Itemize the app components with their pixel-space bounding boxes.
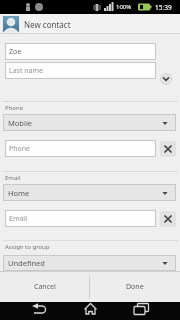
staticText: 15:39: [155, 3, 172, 12]
button[interactable]: Mobile: [3, 114, 176, 131]
button[interactable]: Phone: [5, 140, 156, 157]
button[interactable]: [60, 302, 120, 320]
staticText: Mobile: [8, 118, 33, 128]
button[interactable]: Done: [90, 271, 180, 302]
staticText: Done: [126, 282, 144, 292]
staticText: Home: [8, 188, 30, 198]
staticText: 100%: [116, 3, 132, 11]
button[interactable]: Home: [3, 184, 176, 201]
staticText: Email: [5, 174, 21, 182]
staticText: Email: [9, 214, 27, 224]
staticText: Phone: [5, 104, 24, 112]
staticText: Undefined: [8, 258, 45, 268]
staticText: Cancel: [34, 282, 56, 292]
button[interactable]: Cancel: [0, 271, 89, 302]
staticText: Zoe: [9, 47, 22, 57]
button[interactable]: [120, 302, 180, 320]
button[interactable]: [0, 302, 60, 320]
staticText: Phone: [9, 144, 31, 154]
button[interactable]: Undefined: [3, 255, 176, 271]
button[interactable]: [160, 141, 176, 157]
staticText: Last name: [9, 66, 44, 76]
button[interactable]: [160, 211, 176, 227]
button[interactable]: Zoe: [5, 43, 156, 60]
staticText: Assign to group: [5, 243, 50, 251]
button[interactable]: [160, 73, 172, 85]
button[interactable]: Email: [5, 210, 156, 227]
button[interactable]: Last name: [5, 62, 156, 79]
staticText: New contact: [24, 19, 71, 30]
